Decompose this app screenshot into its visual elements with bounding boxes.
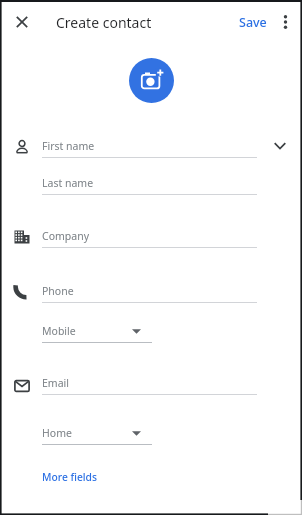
button[interactable]: Company (42, 223, 257, 249)
staticText: First name (42, 139, 95, 153)
staticText: Company (42, 229, 89, 243)
staticText: Home (42, 426, 72, 440)
staticText: Last name (42, 176, 94, 190)
staticText: Email (42, 376, 69, 390)
button[interactable]: Email (42, 370, 257, 396)
staticText: Save (239, 14, 267, 31)
staticText: Phone (42, 284, 74, 298)
button[interactable]: Home (42, 420, 152, 446)
button[interactable]: Mobile (42, 318, 152, 344)
staticText: Create contact (56, 13, 152, 32)
button[interactable]: First name (42, 133, 257, 159)
button[interactable]: Phone (42, 278, 257, 304)
button[interactable] (264, 130, 296, 162)
button[interactable] (0, 0, 44, 44)
staticText: Mobile (42, 324, 76, 338)
button[interactable] (129, 58, 174, 103)
button[interactable] (270, 0, 300, 44)
button[interactable]: More fields (36, 464, 112, 490)
button[interactable]: Last name (42, 170, 257, 196)
button[interactable]: Save (230, 4, 276, 40)
staticText: More fields (42, 470, 98, 484)
